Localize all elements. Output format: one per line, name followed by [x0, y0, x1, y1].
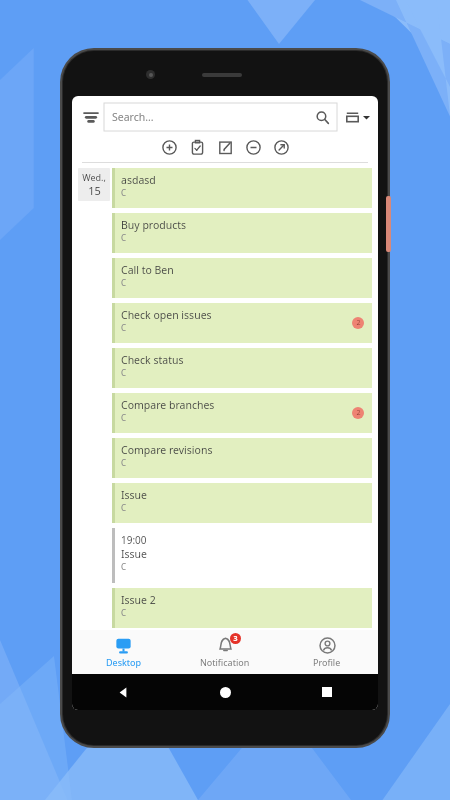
staticText: 2 — [356, 408, 361, 418]
staticText: Buy products — [121, 218, 187, 232]
staticText: 3 — [233, 634, 238, 644]
staticText: Call to Ben — [121, 263, 174, 277]
staticText: Notification — [200, 656, 250, 668]
button[interactable]: Buy products — [112, 213, 372, 253]
staticText: Issue — [121, 547, 148, 561]
button[interactable]: Open — [267, 133, 295, 161]
button[interactable]: Home — [174, 674, 276, 710]
button[interactable]: Call to Ben — [112, 258, 372, 298]
staticText: 15 — [88, 183, 101, 198]
staticText: Compare revisions — [121, 443, 213, 457]
staticText: Check status — [121, 353, 184, 367]
staticText: Desktop — [106, 656, 141, 668]
staticText: Issue — [121, 488, 148, 502]
button[interactable]: 3 — [174, 630, 276, 674]
button[interactable]: Issue — [112, 483, 372, 523]
button[interactable]: Remove — [239, 133, 267, 161]
button[interactable]: Search... — [104, 103, 337, 131]
staticText: Profile — [313, 656, 341, 668]
staticText: C — [121, 322, 127, 333]
staticText: C — [121, 187, 127, 198]
staticText: C — [121, 232, 127, 243]
staticText: C — [121, 607, 127, 618]
staticText: C — [121, 277, 127, 288]
button[interactable]: Check status — [112, 348, 372, 388]
button[interactable]: Recents — [276, 674, 378, 710]
button[interactable]: View options — [343, 108, 372, 127]
button[interactable]: Desktop — [72, 630, 174, 674]
button[interactable]: Wed., — [78, 168, 110, 201]
button[interactable]: Compare branches — [112, 393, 372, 433]
staticText: C — [121, 502, 127, 513]
staticText: Wed., — [82, 171, 106, 183]
button[interactable]: Issue 2 — [112, 588, 372, 628]
button[interactable]: Add — [155, 133, 183, 161]
staticText: C — [121, 561, 127, 572]
staticText: Compare branches — [121, 398, 215, 412]
button[interactable]: Check open issues — [112, 303, 372, 343]
staticText: 19:00 — [121, 533, 147, 547]
button[interactable]: 19:00 — [112, 528, 372, 583]
button[interactable]: Edit — [211, 133, 239, 161]
button[interactable]: Back — [72, 674, 174, 710]
staticText: Search... — [112, 110, 154, 124]
button[interactable]: Profile — [276, 630, 378, 674]
button[interactable]: Filter — [78, 104, 104, 130]
staticText: C — [121, 367, 127, 378]
staticText: C — [121, 412, 127, 423]
staticText: Issue 2 — [121, 593, 156, 607]
staticText: 2 — [356, 318, 361, 328]
staticText: C — [121, 457, 127, 468]
button[interactable]: Tasks — [183, 133, 211, 161]
button[interactable]: Compare revisions — [112, 438, 372, 478]
staticText: Check open issues — [121, 308, 212, 322]
button[interactable]: asdasd — [112, 168, 372, 208]
staticText: asdasd — [121, 173, 156, 187]
